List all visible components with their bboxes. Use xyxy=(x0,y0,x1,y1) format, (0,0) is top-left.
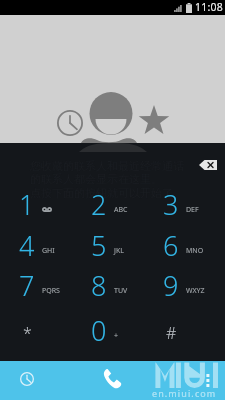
staticText: ABC xyxy=(114,205,128,215)
staticText: # xyxy=(166,322,177,344)
button[interactable]: 2 xyxy=(73,184,145,224)
button[interactable]: 0 xyxy=(73,310,145,350)
staticText: 3 xyxy=(163,186,179,223)
staticText: PQRS xyxy=(42,286,60,296)
button[interactable]: Recents xyxy=(9,361,45,397)
button[interactable]: 3 xyxy=(145,184,217,224)
button[interactable]: 5 xyxy=(73,225,145,265)
staticText: + xyxy=(114,331,119,341)
staticText: TUV xyxy=(114,286,128,296)
button[interactable]: 8 xyxy=(73,265,145,305)
staticText: WXYZ xyxy=(186,286,205,296)
button[interactable]: Favorites xyxy=(138,107,170,137)
button[interactable]: Backspace xyxy=(199,160,217,170)
staticText: MNO xyxy=(186,246,204,256)
button[interactable]: 4 xyxy=(1,225,73,265)
staticText: 7 xyxy=(19,267,35,304)
button[interactable]: 1 xyxy=(1,184,73,224)
staticText: 5 xyxy=(91,227,107,264)
staticText: 您收藏的联系人和最近经常通话 的联系人都会显示在这里。 点按下面的按钮就可以开始… xyxy=(30,159,184,200)
button[interactable]: Contacts xyxy=(77,91,145,143)
button[interactable]: 7 xyxy=(1,265,73,305)
button[interactable]: 6 xyxy=(145,225,217,265)
button[interactable]: 9 xyxy=(145,265,217,305)
button[interactable]: Recent calls xyxy=(56,109,84,137)
staticText: 9 xyxy=(163,267,179,304)
staticText: 2 xyxy=(91,186,107,223)
staticText: * xyxy=(23,322,32,344)
staticText: GHI xyxy=(42,246,55,256)
staticText: 1 xyxy=(19,186,35,223)
staticText: 6 xyxy=(163,227,179,264)
staticText: 0 xyxy=(91,312,107,349)
staticText: JKL xyxy=(114,246,124,256)
staticText: 11:08 xyxy=(195,0,223,14)
staticText: 8 xyxy=(91,267,107,304)
button[interactable]: Dial xyxy=(94,361,130,397)
staticText: DEF xyxy=(186,205,199,215)
staticText: en.miui.com xyxy=(152,387,217,399)
button[interactable]: # xyxy=(145,310,217,350)
staticText: 4 xyxy=(19,227,35,264)
button[interactable]: * xyxy=(1,310,73,350)
